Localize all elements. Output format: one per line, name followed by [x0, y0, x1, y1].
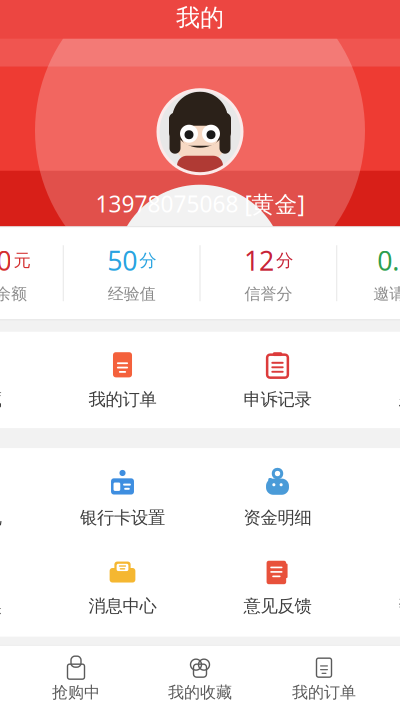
staticText: 账户余额: [0, 284, 27, 304]
staticText: 我的订单: [292, 683, 356, 702]
button[interactable]: 资金明细: [200, 454, 355, 542]
staticText: 12: [244, 243, 274, 278]
button[interactable]: 消息中心: [45, 542, 200, 631]
button[interactable]: 我的收藏: [138, 650, 262, 708]
staticText: 经验值: [108, 284, 156, 304]
button[interactable]: 我要提现: [0, 454, 45, 542]
staticText: 抢购中: [52, 683, 100, 702]
staticText: 消息中心: [88, 595, 156, 617]
staticText: 50: [107, 243, 137, 278]
staticText: 我的: [176, 3, 224, 32]
button[interactable]: 我的订单: [262, 650, 386, 708]
staticText: 信誉分: [244, 284, 292, 304]
staticText: 申诉记录: [243, 389, 311, 410]
staticText: 我的订单: [88, 389, 156, 410]
staticText: 帮助中心: [398, 595, 400, 617]
staticText: 我要提现: [0, 507, 1, 528]
staticText: 意见反馈: [243, 595, 311, 617]
button[interactable]: 抢购中: [14, 650, 138, 708]
staticText: 元: [13, 250, 30, 271]
staticText: 0.5: [377, 243, 400, 278]
staticText: 分: [139, 250, 156, 271]
staticText: 我的收藏: [168, 683, 232, 702]
staticText: 我的收藏: [0, 389, 1, 410]
staticText: 资金明细: [243, 507, 311, 528]
staticText: 邀请收益: [373, 284, 400, 304]
button[interactable]: 申诉记录: [200, 336, 355, 424]
staticText: 银行卡设置: [80, 507, 165, 528]
staticText: 13978075068 [黄金]: [95, 189, 304, 219]
button[interactable]: 我的订单: [45, 336, 200, 424]
staticText: 差价申请: [398, 389, 400, 410]
staticText: 0.50: [0, 243, 11, 278]
staticText: 邀请有奖: [0, 595, 1, 617]
button[interactable]: 银行卡设置: [45, 454, 200, 542]
button[interactable]: 意见反馈: [200, 542, 355, 631]
button[interactable]: 我的收藏: [0, 336, 45, 424]
staticText: 分: [276, 250, 293, 271]
